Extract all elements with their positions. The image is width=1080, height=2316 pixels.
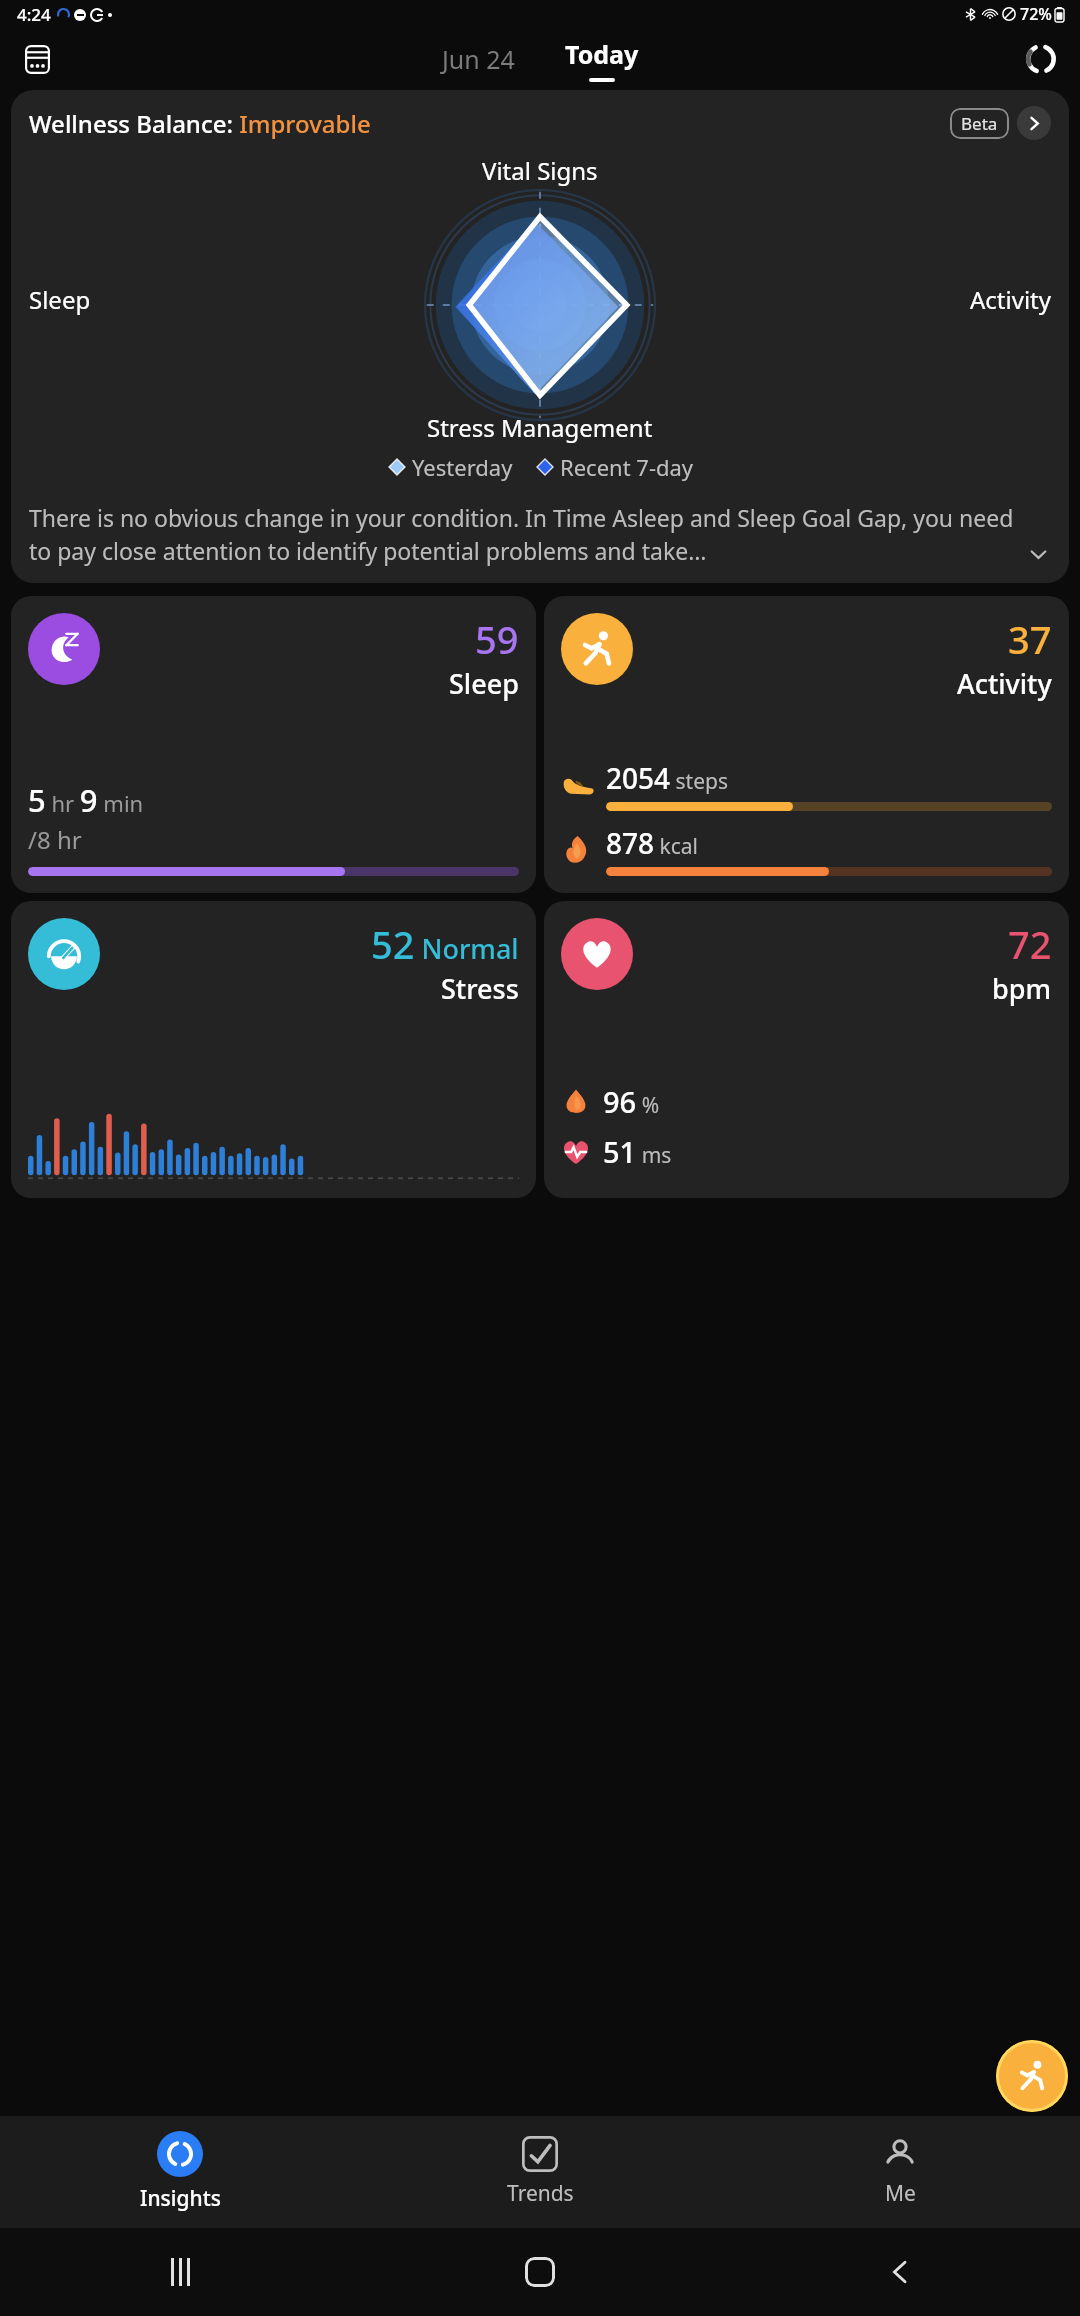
staticText: Jun 24 [442, 42, 515, 76]
button[interactable]: Me [720, 2116, 1080, 2228]
staticText: 59 [475, 613, 519, 665]
button[interactable]: Today [559, 37, 645, 82]
staticText: bpm [992, 970, 1052, 1007]
button[interactable]: Jun 24 [436, 34, 521, 84]
staticText: /8 hr [28, 823, 82, 856]
button[interactable]: 52 Normal [11, 901, 536, 1198]
staticText: 52 Normal [371, 918, 519, 970]
staticText: Sleep [449, 665, 519, 702]
staticText: Beta [961, 112, 998, 135]
staticText: Stress Management [427, 411, 653, 444]
button[interactable]: 59 [11, 596, 536, 893]
staticText: Activity [970, 283, 1051, 316]
button[interactable]: Calendar [17, 39, 57, 79]
staticText: 72 [1008, 918, 1052, 970]
staticText: Activity [957, 665, 1052, 702]
staticText: 4:24 [17, 3, 51, 26]
staticText: Trends [507, 2179, 574, 2208]
staticText: Recent 7-day [560, 452, 694, 482]
staticText: Vital Signs [482, 154, 598, 187]
button[interactable]: 37 [544, 596, 1069, 893]
staticText: 37 [1008, 613, 1052, 665]
staticText: Insights [140, 2184, 221, 2213]
staticText: Stress [441, 970, 519, 1007]
button[interactable]: Wellness Balance: Improvable [11, 90, 1069, 583]
staticText: There is no obvious change in your condi… [29, 502, 1019, 567]
button[interactable]: Home [360, 2228, 720, 2316]
staticText: 51 ms [603, 1132, 672, 1171]
staticText: 878 kcal [606, 824, 699, 862]
button[interactable]: Details [1017, 106, 1051, 140]
button[interactable]: Sync [1019, 37, 1063, 81]
button[interactable]: Recents [0, 2228, 360, 2316]
button[interactable]: 72 [544, 901, 1069, 1198]
staticText: Me [885, 2179, 916, 2208]
staticText: Yesterday [412, 452, 513, 482]
button[interactable]: Trends [360, 2116, 720, 2228]
staticText: Sleep [29, 283, 91, 316]
button[interactable]: Beta [950, 108, 1009, 139]
button[interactable]: Back [720, 2228, 1080, 2316]
staticText: 72% [1020, 3, 1052, 25]
staticText: Today [565, 37, 639, 71]
staticText: 5 hr 9 min [28, 779, 144, 821]
staticText: 2054 steps [606, 759, 728, 797]
button[interactable]: Start workout [996, 2040, 1068, 2112]
staticText: Wellness Balance: Improvable [29, 107, 371, 140]
button[interactable]: Insights [0, 2116, 360, 2228]
staticText: 96 % [603, 1082, 660, 1121]
button[interactable]: Expand [1025, 541, 1051, 567]
